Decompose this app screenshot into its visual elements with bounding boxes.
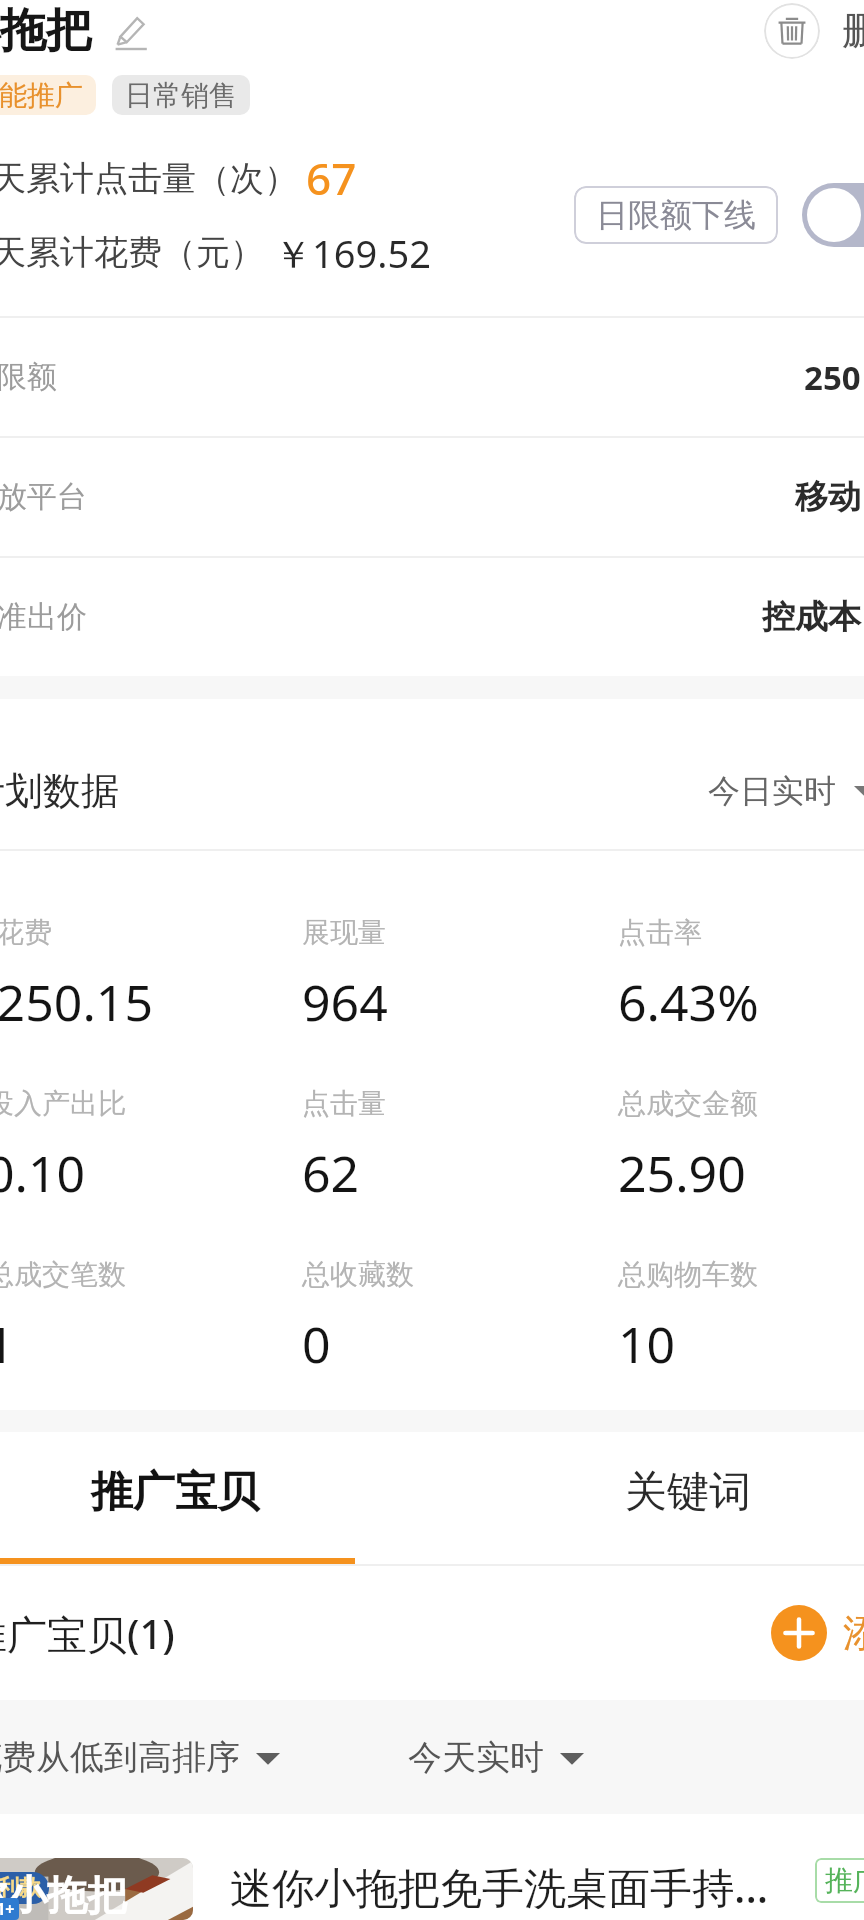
staticText: 智能推广 bbox=[0, 78, 83, 113]
button[interactable]: 精准出价 bbox=[0, 558, 864, 676]
button[interactable]: 日限额下线 bbox=[574, 186, 778, 244]
staticText: 日常销售 bbox=[125, 78, 237, 113]
staticText: 你小拖把 bbox=[0, 1870, 127, 1920]
staticText: 总成交笔数 bbox=[0, 1257, 126, 1292]
staticText: ￥169.52 bbox=[274, 227, 431, 279]
staticText: 总收藏数 bbox=[302, 1257, 414, 1292]
button[interactable]: 推广宝贝 bbox=[0, 1432, 355, 1564]
button[interactable]: 添加 bbox=[771, 1605, 864, 1661]
staticText: ￥21+ bbox=[0, 1898, 15, 1920]
button[interactable]: 薄利款 bbox=[0, 1814, 864, 1920]
staticText: 点击率 bbox=[618, 915, 702, 950]
staticText: 今天实时 bbox=[408, 1736, 544, 1779]
staticText: 250 bbox=[804, 355, 861, 400]
button[interactable]: 花费从低到高排序 bbox=[0, 1736, 280, 1779]
staticText: 添加 bbox=[843, 1609, 864, 1657]
staticText: 薄利款 bbox=[0, 1874, 41, 1902]
staticText: 今天累计花费（元） bbox=[0, 231, 264, 274]
button[interactable]: 投放平台 bbox=[0, 438, 864, 556]
staticText: 0 bbox=[302, 1310, 331, 1378]
staticText: 25.90 bbox=[618, 1139, 746, 1207]
staticText: 总成交金额 bbox=[618, 1086, 758, 1121]
staticText: 0.10 bbox=[0, 1139, 86, 1207]
button[interactable]: 删除 bbox=[842, 7, 864, 55]
staticText: 今天累计点击量（次） bbox=[0, 157, 298, 200]
staticText: 计划数据 bbox=[0, 767, 119, 815]
staticText: 控成本 bbox=[762, 596, 861, 638]
button[interactable]: 日限额 bbox=[0, 318, 864, 436]
button[interactable]: 编辑名称 bbox=[108, 9, 152, 53]
staticText: 关键词 bbox=[625, 1466, 751, 1519]
staticText: 迷你小拖把免手洗桌面手持... bbox=[230, 1858, 769, 1915]
staticText: 投放平台 bbox=[0, 478, 87, 516]
staticText: 推广宝贝 bbox=[91, 1466, 259, 1519]
staticText: 展现量 bbox=[302, 915, 386, 950]
button[interactable]: 关键词 bbox=[508, 1432, 864, 1564]
staticText: 6.43% bbox=[618, 968, 759, 1036]
staticText: 移动 bbox=[795, 476, 861, 518]
staticText: 日销计划迷你小拖把 bbox=[0, 2, 92, 60]
staticText: 点击量 bbox=[302, 1086, 386, 1121]
staticText: 日限额下线 bbox=[596, 195, 756, 235]
staticText: 总购物车数 bbox=[618, 1257, 758, 1292]
staticText: 总花费 bbox=[0, 915, 52, 950]
staticText: 投入产出比 bbox=[0, 1086, 126, 1121]
staticText: 精准出价 bbox=[0, 598, 87, 636]
staticText: 推广宝贝(1) bbox=[0, 1606, 175, 1661]
staticText: 日限额 bbox=[0, 358, 57, 396]
staticText: 62 bbox=[302, 1139, 360, 1207]
staticText: 花费从低到高排序 bbox=[0, 1736, 240, 1779]
button[interactable]: 今天实时 bbox=[408, 1736, 584, 1779]
staticText: 964 bbox=[302, 968, 388, 1036]
staticText: 推广中 bbox=[825, 1863, 864, 1898]
button[interactable]: 今日实时 bbox=[708, 771, 864, 811]
staticText: 1250.15 bbox=[0, 968, 153, 1036]
staticText: 今日实时 bbox=[708, 771, 836, 811]
staticText: 10 bbox=[618, 1310, 676, 1378]
button[interactable]: 删除计划 bbox=[764, 3, 820, 59]
staticText: 1 bbox=[0, 1310, 15, 1378]
staticText: 67 bbox=[306, 148, 357, 208]
button[interactable]: 日限额下线开关 bbox=[802, 183, 864, 247]
